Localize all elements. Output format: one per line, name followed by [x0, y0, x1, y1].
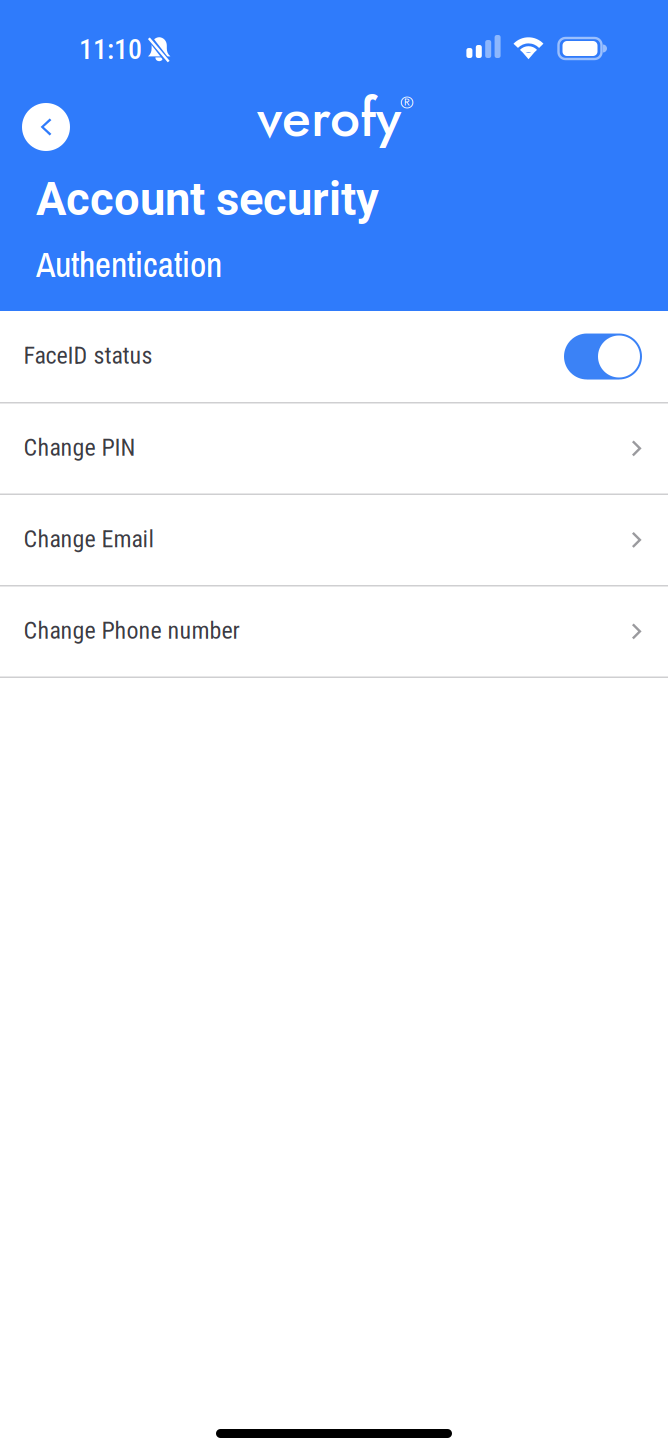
- staticText: Change PIN: [23, 433, 135, 461]
- staticText: Change Email: [23, 525, 154, 553]
- button[interactable]: FaceID status: [0, 311, 668, 403]
- button[interactable]: Change PIN: [0, 403, 668, 495]
- staticText: Authentication: [36, 241, 222, 288]
- button[interactable]: Back: [22, 103, 70, 151]
- button[interactable]: Change Phone number: [0, 586, 668, 678]
- staticText: Account security: [36, 173, 379, 226]
- staticText: Change Phone number: [23, 616, 239, 644]
- staticText: ®: [400, 90, 414, 115]
- staticText: FaceID status: [23, 341, 152, 369]
- button[interactable]: Change Email: [0, 495, 668, 586]
- staticText: verofy: [257, 79, 401, 156]
- staticText: 11:10: [79, 33, 142, 66]
